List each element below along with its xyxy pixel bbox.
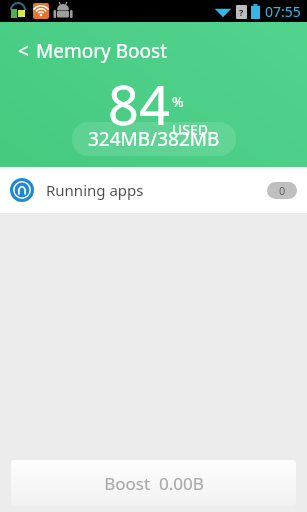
- button[interactable]: <: [12, 36, 173, 66]
- staticText: Boost 0.00B: [104, 472, 204, 495]
- staticText: 84: [108, 67, 170, 141]
- staticText: Memory Boost: [36, 38, 167, 64]
- staticText: USED: [172, 120, 208, 139]
- staticText: <: [18, 38, 29, 64]
- button[interactable]: Boost 0.00B: [11, 460, 296, 506]
- staticText: %: [172, 92, 184, 111]
- staticText: 07:55: [265, 2, 301, 21]
- staticText: 0: [279, 183, 286, 198]
- staticText: 324MB/382MB: [88, 126, 220, 152]
- staticText: ?: [239, 6, 244, 18]
- staticText: Running apps: [46, 180, 144, 200]
- button[interactable]: Running apps icon: [0, 167, 307, 213]
- other: Running apps icon: [10, 178, 34, 202]
